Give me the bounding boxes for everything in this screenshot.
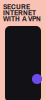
staticText: WITH A VPN — [3, 13, 41, 24]
staticText: SECURE — [3, 1, 30, 12]
staticText: INTERNET — [3, 7, 36, 18]
